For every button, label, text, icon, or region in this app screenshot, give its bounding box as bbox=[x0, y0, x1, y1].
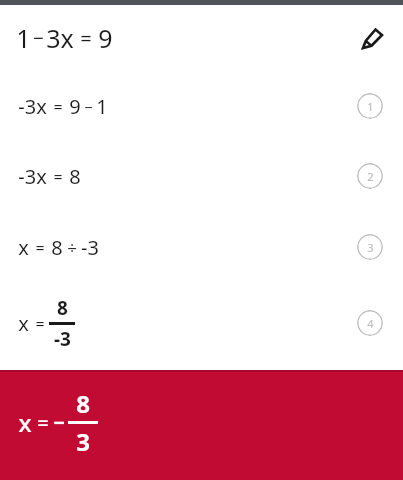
button[interactable]: x bbox=[0, 370, 403, 480]
staticText: − bbox=[84, 97, 93, 117]
staticText: ÷ bbox=[67, 236, 77, 259]
button[interactable]: 3 bbox=[357, 234, 383, 260]
staticText: = bbox=[53, 96, 63, 118]
button[interactable]: 2 bbox=[357, 163, 383, 189]
staticText: 1 bbox=[367, 99, 374, 114]
staticText: x bbox=[18, 234, 29, 261]
staticText: 4 bbox=[367, 316, 374, 331]
staticText: = bbox=[37, 409, 49, 436]
staticText: 3 bbox=[367, 240, 374, 255]
staticText: = bbox=[80, 25, 92, 52]
staticText: 8 bbox=[51, 234, 63, 261]
staticText: -3 bbox=[81, 234, 99, 261]
button[interactable]: -3x bbox=[0, 71, 403, 141]
staticText: 1 bbox=[96, 93, 108, 120]
staticText: -3 bbox=[54, 326, 71, 352]
staticText: 9 bbox=[69, 93, 81, 120]
button[interactable]: 1 bbox=[357, 93, 383, 119]
button[interactable]: 4 bbox=[357, 310, 383, 336]
button[interactable]: -3x bbox=[0, 141, 403, 211]
staticText: − bbox=[53, 409, 65, 436]
staticText: 8 bbox=[76, 387, 90, 420]
staticText: -3x bbox=[18, 163, 47, 190]
staticText: x bbox=[18, 310, 29, 337]
staticText: 9 bbox=[98, 21, 113, 55]
staticText: = bbox=[35, 313, 45, 335]
button[interactable]: Edit equation bbox=[349, 15, 395, 61]
staticText: 1 bbox=[16, 21, 31, 55]
staticText: − bbox=[33, 25, 44, 51]
staticText: 8 bbox=[57, 295, 68, 321]
staticText: = bbox=[35, 237, 45, 259]
button[interactable]: x bbox=[0, 283, 403, 363]
staticText: 3 bbox=[76, 425, 90, 458]
staticText: 2 bbox=[367, 169, 374, 184]
staticText: 8 bbox=[69, 163, 81, 190]
staticText: = bbox=[53, 166, 63, 188]
staticText: -3x bbox=[18, 93, 47, 120]
staticText: x bbox=[18, 406, 32, 439]
staticText: 3x bbox=[46, 21, 74, 55]
button[interactable]: x bbox=[0, 211, 403, 283]
